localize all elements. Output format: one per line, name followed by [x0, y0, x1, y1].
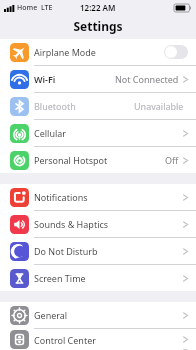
button[interactable]: Airplane Mode	[0, 39, 196, 66]
staticText: Bluetooth	[34, 100, 76, 112]
staticText: Control Center	[34, 334, 96, 346]
staticText: Airplane Mode	[34, 46, 96, 58]
staticText: Unavailable	[134, 100, 184, 112]
staticText: Home	[17, 3, 38, 13]
staticText: Do Not Disturb	[34, 245, 98, 257]
button[interactable]: Notifications	[0, 184, 196, 211]
staticText: Settings	[73, 18, 123, 34]
button[interactable]: Wi-Fi	[0, 66, 196, 93]
staticText: Screen Time	[34, 272, 86, 284]
button[interactable]: Airplane Mode toggle	[164, 45, 188, 59]
staticText: Wi-Fi	[34, 73, 56, 85]
staticText: 12:22 AM	[80, 2, 116, 13]
staticText: LTE	[41, 3, 53, 13]
button[interactable]: Sounds & Haptics	[0, 211, 196, 238]
staticText: Sounds & Haptics	[34, 218, 109, 230]
button[interactable]: General	[0, 302, 196, 329]
staticText: Off	[165, 154, 179, 166]
button[interactable]: Screen Time	[0, 265, 196, 291]
staticText: Cellular	[34, 127, 67, 139]
button[interactable]: Do Not Disturb	[0, 238, 196, 265]
button[interactable]: Control Center	[0, 329, 196, 350]
staticText: General	[34, 309, 68, 321]
staticText: Personal Hotspot	[34, 154, 108, 166]
button[interactable]: Personal Hotspot	[0, 147, 196, 173]
button[interactable]: Bluetooth	[0, 93, 196, 120]
button[interactable]: Cellular	[0, 120, 196, 147]
staticText: Not Connected	[115, 73, 179, 85]
staticText: Notifications	[34, 191, 88, 203]
